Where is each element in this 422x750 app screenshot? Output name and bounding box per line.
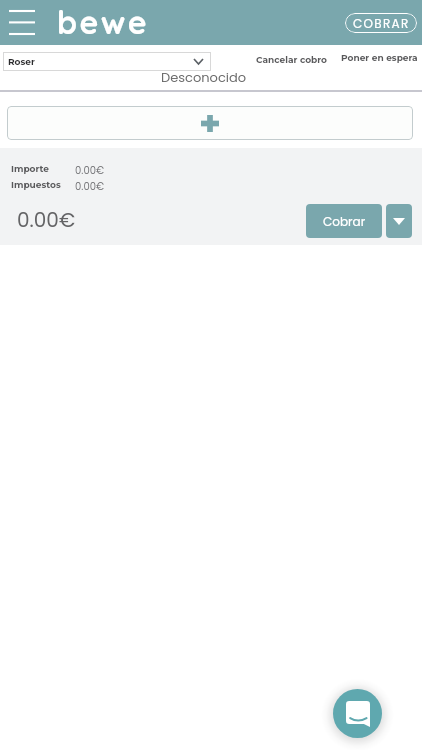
- button[interactable]: Roser: [3, 52, 211, 71]
- staticText: Cancelar cobro: [256, 54, 327, 65]
- button[interactable]: Poner en espera: [337, 49, 422, 66]
- staticText: Importe: [11, 163, 75, 174]
- button[interactable]: Menu: [4, 4, 40, 40]
- staticText: Impuestos: [11, 179, 75, 190]
- button[interactable]: Cancelar cobro: [252, 51, 331, 68]
- staticText: 0.00€: [75, 163, 105, 177]
- button[interactable]: Cobrar: [306, 204, 382, 238]
- staticText: Roser: [8, 56, 35, 67]
- button[interactable]: Add item: [7, 106, 413, 140]
- button[interactable]: More payment options: [386, 204, 412, 238]
- button[interactable]: COBRAR: [345, 13, 417, 33]
- staticText: 0.00€: [75, 179, 105, 193]
- staticText: Poner en espera: [341, 52, 418, 63]
- staticText: Cobrar: [323, 213, 366, 230]
- staticText: Desconocido: [161, 68, 247, 86]
- button[interactable]: Open chat: [333, 689, 382, 738]
- staticText: 0.00€: [17, 206, 76, 234]
- staticText: COBRAR: [353, 15, 410, 32]
- staticText: bewe: [57, 2, 150, 42]
